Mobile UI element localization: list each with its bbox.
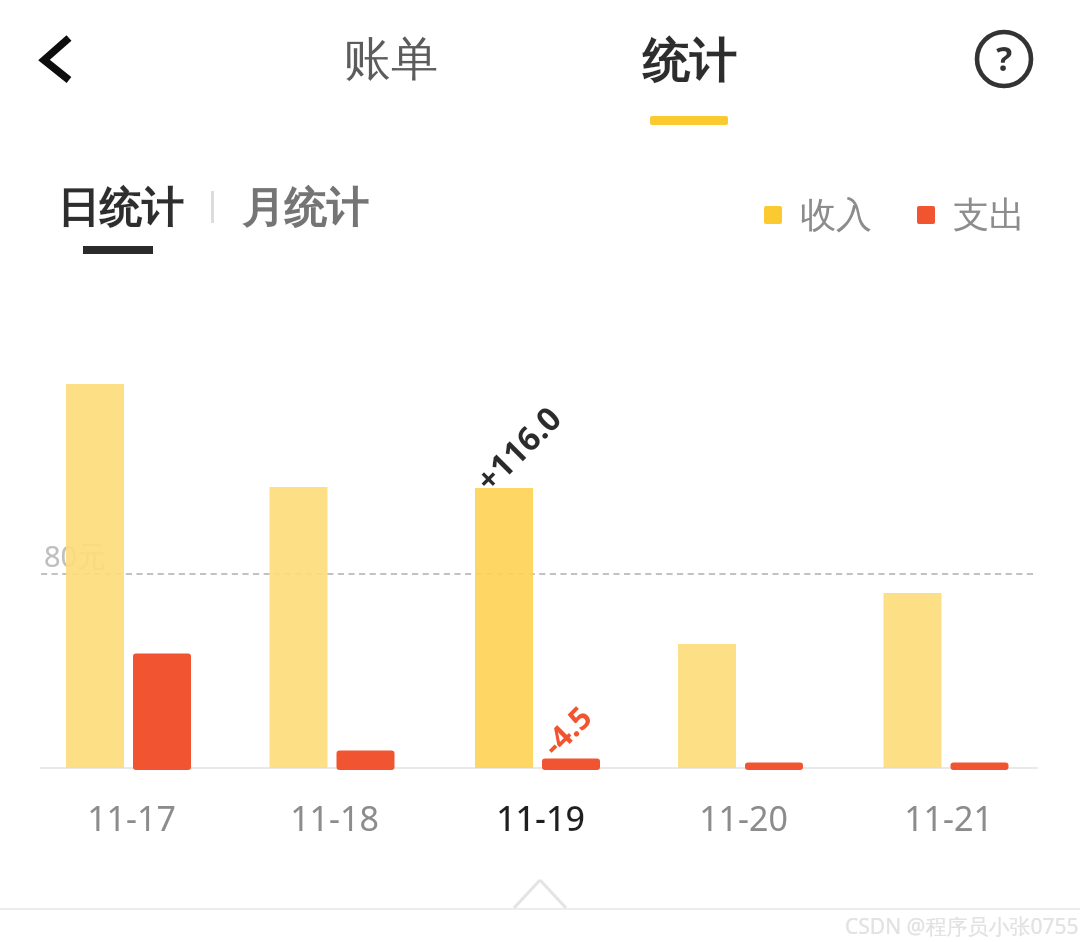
staticText: 11-18 <box>290 795 379 841</box>
staticText: 11-17 <box>87 795 176 841</box>
staticText: 80元 <box>44 536 107 576</box>
button[interactable]: 月统计 <box>235 178 375 240</box>
staticText: 账单 <box>344 30 438 89</box>
staticText: CSDN @程序员小张0755 <box>845 912 1079 941</box>
staticText: 11-19 <box>496 795 585 841</box>
button[interactable]: 日统计 <box>50 178 190 260</box>
button[interactable]: 账单 <box>322 16 460 102</box>
staticText: 收入 <box>800 192 872 237</box>
staticText: 支出 <box>953 192 1025 237</box>
staticText: 11-20 <box>699 795 788 841</box>
button[interactable]: Expand <box>504 872 576 916</box>
staticText: +116.0 <box>465 396 571 501</box>
staticText: ? <box>996 35 1013 81</box>
staticText: 11-21 <box>904 795 993 841</box>
staticText: -4.5 <box>532 696 601 764</box>
button[interactable]: 统计 <box>618 16 760 134</box>
button[interactable]: Help <box>972 27 1036 91</box>
staticText: 月统计 <box>242 182 368 235</box>
button[interactable]: Back <box>14 18 98 102</box>
staticText: 统计 <box>642 32 736 91</box>
staticText: 日统计 <box>57 182 183 235</box>
